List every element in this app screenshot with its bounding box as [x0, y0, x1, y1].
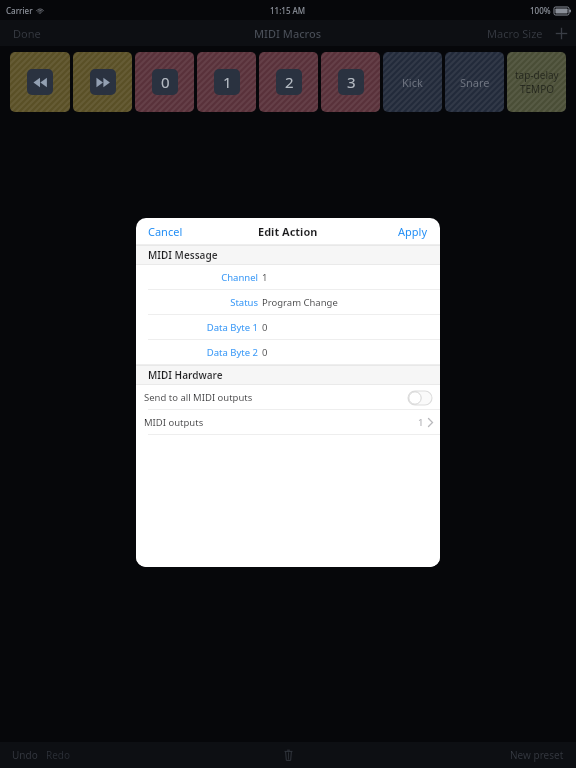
- staticText: TEMPO: [520, 82, 555, 96]
- button[interactable]: Fast forward: [73, 52, 132, 112]
- staticText: Edit Action: [258, 224, 318, 239]
- staticText: 0: [161, 72, 170, 92]
- button[interactable]: Send to all MIDI outputs toggle: [408, 391, 432, 405]
- button[interactable]: Delete: [280, 745, 297, 765]
- button[interactable]: Data Byte 2: [136, 340, 440, 365]
- button[interactable]: tap-delay: [507, 52, 566, 112]
- button[interactable]: New preset: [498, 744, 576, 766]
- button[interactable]: Data Byte 1: [136, 315, 440, 340]
- staticText: Snare: [460, 75, 490, 90]
- staticText: MIDI Message: [148, 248, 218, 262]
- button[interactable]: 2: [259, 52, 318, 112]
- staticText: Status: [196, 296, 258, 309]
- staticText: 3: [347, 72, 356, 92]
- staticText: 1: [223, 72, 232, 92]
- staticText: Done: [13, 26, 41, 41]
- staticText: Macro Size: [487, 26, 543, 41]
- button[interactable]: Cancel: [136, 219, 195, 244]
- button[interactable]: Channel: [136, 265, 440, 290]
- staticText: Undo: [12, 748, 38, 762]
- staticText: Data Byte 1: [196, 321, 258, 334]
- staticText: New preset: [510, 748, 564, 762]
- staticText: Data Byte 2: [196, 346, 258, 359]
- staticText: 11:15 AM: [270, 5, 306, 16]
- staticText: Program Change: [262, 296, 338, 309]
- button[interactable]: Undo: [0, 744, 42, 766]
- staticText: 0: [262, 346, 268, 359]
- staticText: 0: [262, 321, 268, 334]
- staticText: MIDI Macros: [254, 26, 322, 41]
- staticText: 100%: [530, 5, 551, 16]
- staticText: MIDI Hardware: [148, 368, 223, 382]
- staticText: Channel: [196, 271, 258, 284]
- button[interactable]: Send to all MIDI outputs: [136, 385, 440, 410]
- button[interactable]: 0: [135, 52, 194, 112]
- staticText: 2: [285, 72, 294, 92]
- staticText: 1: [418, 416, 424, 429]
- staticText: Cancel: [148, 224, 183, 239]
- button[interactable]: 1: [197, 52, 256, 112]
- button[interactable]: Add macro: [547, 27, 576, 40]
- button[interactable]: Redo: [42, 744, 75, 766]
- staticText: tap-delay: [515, 68, 559, 82]
- button[interactable]: Apply: [386, 219, 440, 244]
- button[interactable]: Macro Size: [483, 22, 547, 45]
- button[interactable]: Snare: [445, 52, 504, 112]
- staticText: Carrier: [6, 5, 33, 16]
- staticText: MIDI outputs: [144, 416, 204, 429]
- staticText: Kick: [402, 75, 423, 90]
- button[interactable]: 3: [321, 52, 380, 112]
- button[interactable]: Kick: [383, 52, 442, 112]
- staticText: Redo: [46, 748, 71, 762]
- button[interactable]: MIDI outputs: [136, 410, 440, 435]
- staticText: 1: [262, 271, 268, 284]
- button[interactable]: Status: [136, 290, 440, 315]
- staticText: Apply: [398, 224, 428, 239]
- staticText: Send to all MIDI outputs: [144, 391, 253, 404]
- button[interactable]: Rewind: [10, 52, 70, 112]
- button[interactable]: Done: [0, 22, 54, 45]
